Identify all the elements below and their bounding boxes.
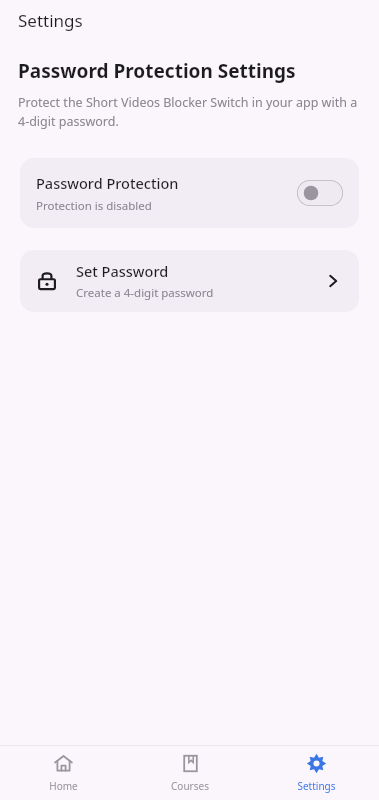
- staticText: Protection is disabled: [36, 198, 152, 214]
- staticText: Protect the Short Videos Blocker Switch …: [18, 94, 358, 130]
- staticText: Password Protection: [36, 173, 179, 193]
- button[interactable]: Toggle password protection: [297, 180, 343, 206]
- button[interactable]: Password Protection: [20, 158, 359, 228]
- staticText: Home: [49, 779, 78, 793]
- button[interactable]: Lock: [20, 250, 359, 312]
- staticText: Courses: [171, 779, 209, 793]
- button[interactable]: Home: [0, 746, 127, 800]
- button[interactable]: Courses: [127, 746, 253, 800]
- staticText: Settings: [18, 9, 83, 32]
- staticText: Settings: [297, 779, 336, 793]
- other: Open set password: [323, 271, 343, 291]
- staticText: Password Protection Settings: [18, 58, 296, 84]
- other: Lock: [36, 270, 58, 292]
- staticText: Set Password: [76, 261, 169, 281]
- staticText: Create a 4-digit password: [76, 285, 214, 301]
- button[interactable]: Settings: [253, 746, 379, 800]
